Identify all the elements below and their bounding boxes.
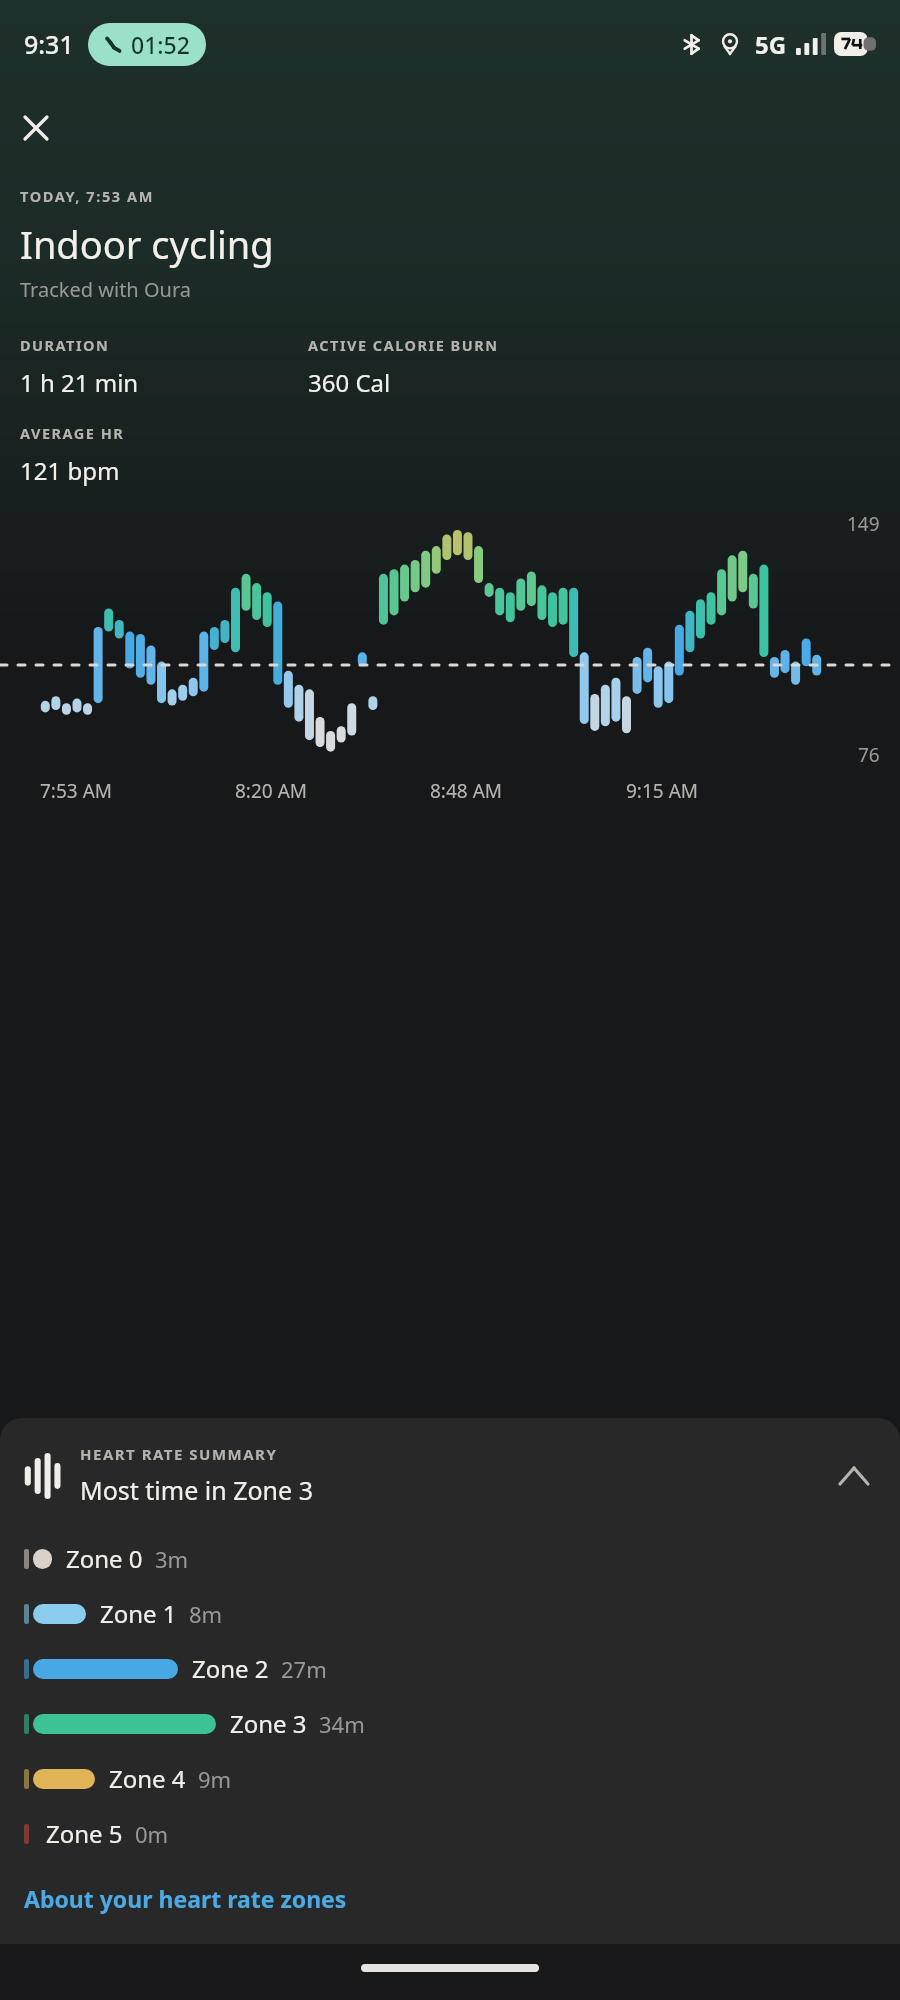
staticText: 8m [189, 1599, 223, 1629]
staticText: Zone 0 [66, 1542, 143, 1575]
staticText: 5G [755, 28, 787, 61]
staticText: 8:48 AM [430, 778, 503, 804]
staticText: 1 h 21 min [20, 366, 139, 399]
staticText: 34m [319, 1709, 365, 1739]
staticText: ACTIVE CALORIE BURN [308, 335, 499, 355]
staticText: 149 [847, 511, 880, 537]
staticText: Indoor cycling [20, 218, 274, 270]
staticText: 8:20 AM [235, 778, 308, 804]
staticText: Zone 4 [109, 1762, 186, 1795]
staticText: 3m [155, 1544, 189, 1574]
staticText: 121 bpm [20, 454, 120, 487]
staticText: 27m [281, 1654, 327, 1684]
staticText: Zone 5 [46, 1817, 123, 1850]
button[interactable]: About your heart rate zones [0, 1877, 371, 1924]
staticText: 7:53 AM [40, 778, 113, 804]
staticText: DURATION [20, 335, 110, 355]
button[interactable]: Collapse heart rate summary [828, 1450, 880, 1502]
staticText: TODAY, 7:53 AM [20, 186, 154, 206]
staticText: Zone 1 [100, 1597, 177, 1630]
button[interactable]: Close [8, 100, 64, 156]
button[interactable]: Ongoing call 01:52 [104, 29, 190, 60]
staticText: Tracked with Oura [20, 276, 191, 303]
staticText: 01:52 [131, 29, 190, 60]
staticText: About your heart rate zones [24, 1883, 347, 1914]
staticText: Most time in Zone 3 [80, 1473, 313, 1507]
staticText: 0m [135, 1819, 169, 1849]
staticText: AVERAGE HR [20, 423, 125, 443]
staticText: 9:15 AM [626, 778, 699, 804]
staticText: HEART RATE SUMMARY [80, 1444, 278, 1464]
staticText: 360 Cal [308, 366, 391, 399]
staticText: 9:31 [24, 27, 74, 61]
staticText: Zone 3 [230, 1707, 307, 1740]
button[interactable]: HEART RATE SUMMARY [0, 1418, 900, 1517]
staticText: 9m [198, 1764, 232, 1794]
staticText: 76 [858, 742, 880, 768]
staticText: Zone 2 [192, 1652, 269, 1685]
